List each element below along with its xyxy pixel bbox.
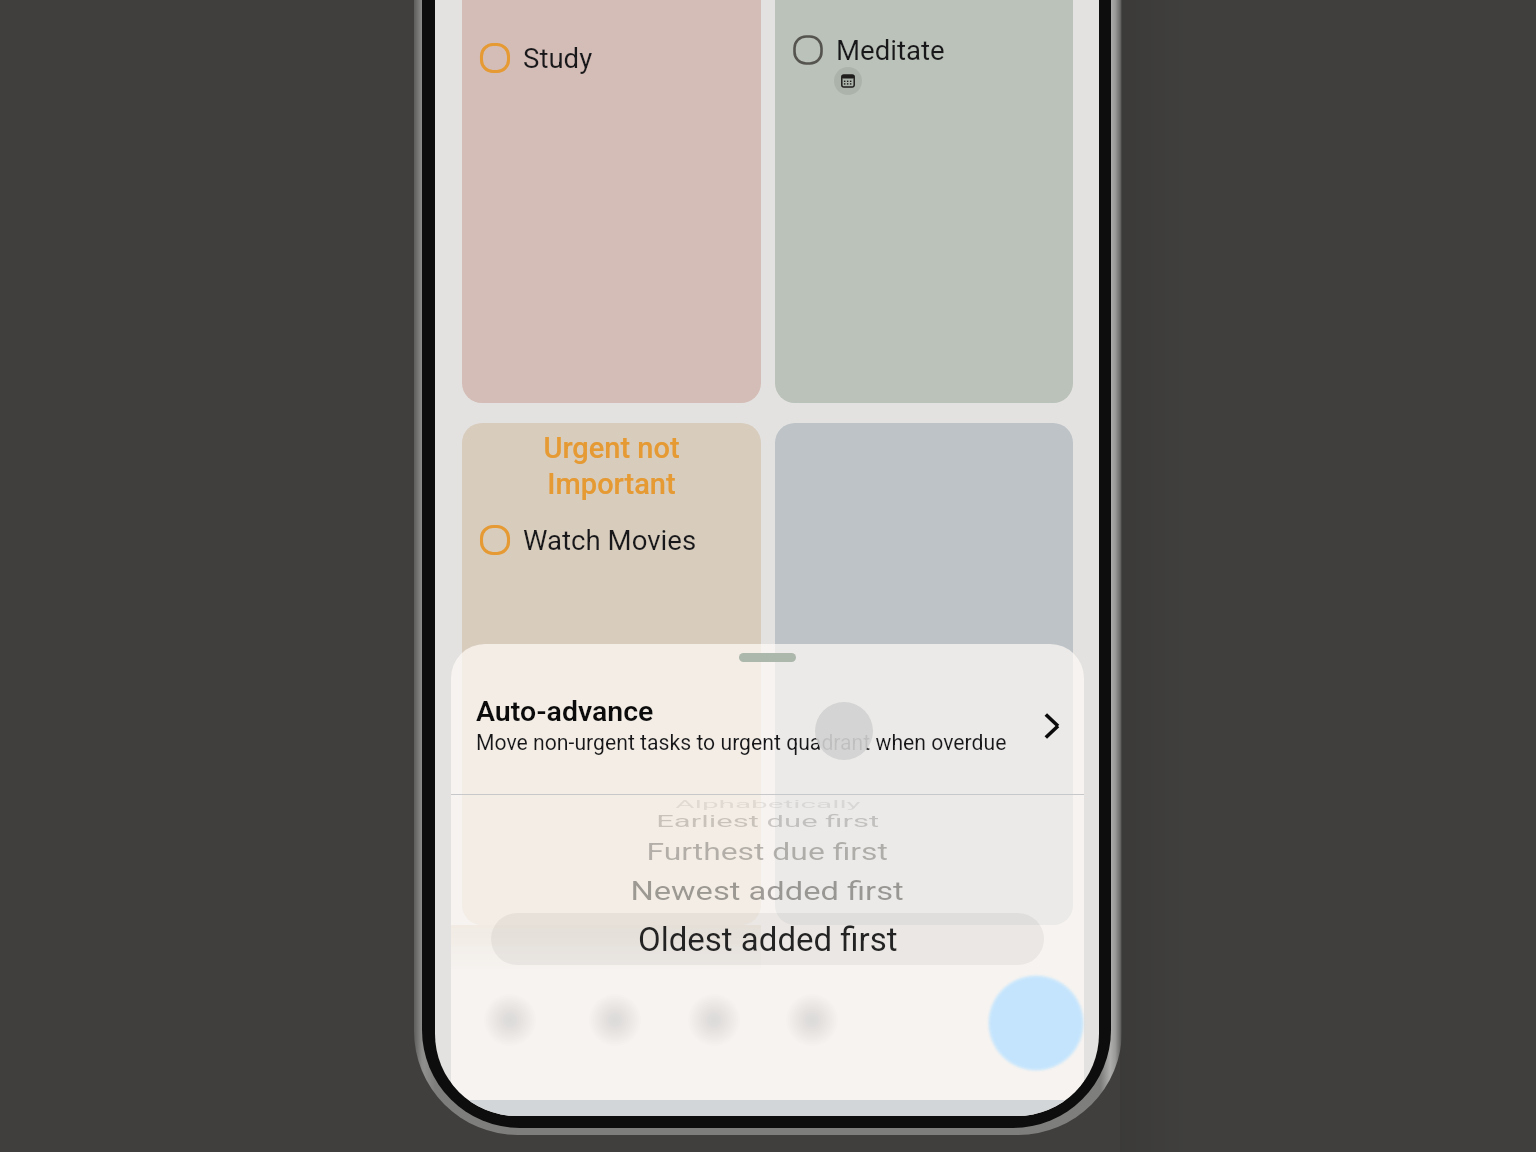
staticText: Furthest due first bbox=[646, 838, 889, 865]
button[interactable]: Study bbox=[462, 0, 761, 403]
button[interactable]: Calendar bbox=[682, 988, 746, 1052]
staticText: Watch Movies bbox=[523, 524, 697, 556]
button[interactable]: Stats bbox=[780, 988, 844, 1052]
staticText: Auto-advance bbox=[476, 695, 654, 728]
staticText: Urgent not Important bbox=[462, 431, 761, 501]
button[interactable]: Earliest due first bbox=[451, 797, 1084, 845]
button[interactable]: Watch Movies bbox=[480, 524, 697, 556]
staticText: Earliest due first bbox=[656, 812, 880, 831]
button[interactable]: Oldest added first bbox=[491, 913, 1044, 965]
button[interactable]: Add task bbox=[976, 963, 1096, 1083]
button[interactable]: Alphabetically bbox=[451, 780, 1084, 828]
staticText: Meditate bbox=[836, 34, 945, 66]
button[interactable]: Matrix bbox=[478, 988, 542, 1052]
staticText: Oldest added first bbox=[638, 920, 898, 959]
staticText: Study bbox=[523, 42, 593, 74]
button[interactable]: Auto-advance bbox=[451, 644, 1084, 794]
button[interactable]: Newest added first bbox=[451, 867, 1084, 915]
button[interactable]: Furthest due first bbox=[451, 827, 1084, 875]
button[interactable]: List bbox=[583, 988, 647, 1052]
button[interactable]: Open auto-advance settings bbox=[1031, 702, 1075, 750]
staticText: Alphabetically bbox=[675, 798, 861, 811]
button[interactable]: Due date bbox=[834, 67, 862, 95]
button[interactable]: Study bbox=[480, 42, 593, 74]
staticText: Move non-urgent tasks to urgent quadrant… bbox=[476, 730, 1007, 755]
button[interactable]: Meditate bbox=[775, 0, 1073, 403]
button[interactable]: Meditate bbox=[793, 34, 945, 66]
staticText: Newest added first bbox=[630, 876, 905, 906]
button[interactable]: Urgent not Important bbox=[462, 423, 761, 925]
button[interactable] bbox=[775, 423, 1073, 925]
